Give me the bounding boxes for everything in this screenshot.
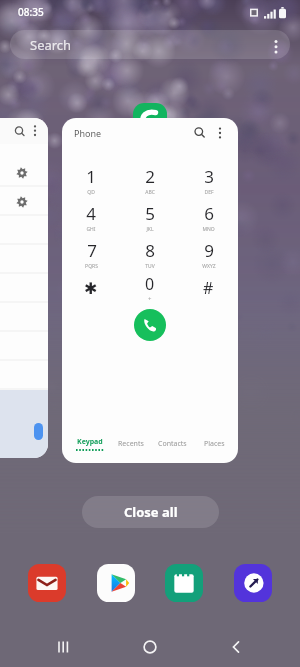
button[interactable]: Play Store (94, 561, 138, 605)
button[interactable]: Home (128, 627, 172, 667)
button[interactable]: 1 (62, 162, 120, 199)
button[interactable]: Contacts (151, 431, 194, 457)
staticText: Recents (118, 439, 144, 449)
staticText: 0 (145, 273, 155, 295)
button[interactable]: More options (210, 123, 230, 143)
staticText: MNO (202, 226, 215, 233)
staticText: 08:35 (18, 5, 44, 19)
staticText: JKL (146, 226, 154, 233)
staticText: Close all (124, 503, 178, 521)
staticText: Search (30, 36, 72, 54)
button[interactable]: 2 (120, 162, 179, 199)
staticText: 5 (145, 202, 155, 225)
staticText: 3 (204, 165, 214, 188)
button[interactable]: Calendar (162, 561, 206, 605)
button[interactable]: Call (134, 309, 166, 341)
button[interactable]: Phone (62, 118, 238, 463)
staticText: 9 (204, 239, 214, 262)
button[interactable]: 4 (62, 199, 120, 236)
button[interactable]: # (179, 273, 238, 303)
button[interactable]: 8 (120, 236, 179, 273)
button[interactable]: More options (262, 31, 290, 59)
staticText: 6 (204, 202, 214, 225)
staticText: Places (204, 439, 225, 449)
button[interactable]: 3 (179, 162, 238, 199)
button[interactable]: Keypad (68, 431, 111, 457)
staticText: ABC (145, 189, 155, 196)
staticText: QD (87, 189, 95, 196)
button[interactable]: Clock (231, 561, 275, 605)
button[interactable]: Search (190, 123, 210, 143)
button[interactable]: Recent apps (42, 627, 86, 667)
staticText: PQRS (85, 263, 98, 270)
button[interactable]: Email (25, 561, 69, 605)
button[interactable]: 7 (62, 236, 120, 273)
button[interactable]: 6 (179, 199, 238, 236)
staticText: Keypad (77, 437, 103, 447)
staticText: WXYZ (202, 263, 216, 270)
staticText: DEF (204, 189, 214, 196)
staticText: Contacts (158, 439, 187, 449)
button[interactable] (0, 118, 48, 458)
staticText: Phone (74, 127, 102, 139)
button[interactable]: ✱ (62, 273, 120, 303)
staticText: 7 (87, 239, 97, 262)
staticText: # (203, 277, 214, 299)
staticText: + (148, 295, 152, 303)
button[interactable]: Back (214, 627, 258, 667)
staticText: TUV (145, 263, 155, 270)
staticText: 2 (145, 165, 155, 188)
staticText: GHI (86, 226, 96, 233)
staticText: 4 (86, 202, 96, 225)
staticText: 1 (86, 165, 96, 188)
button[interactable]: Close all (82, 496, 219, 528)
staticText: ✱ (84, 279, 98, 298)
button[interactable]: Search (10, 30, 290, 59)
staticText: 8 (145, 239, 155, 262)
button[interactable]: 0 (120, 273, 179, 303)
button[interactable]: Places (194, 431, 234, 457)
other: Phone app icon (133, 103, 167, 137)
button[interactable]: 9 (179, 236, 238, 273)
button[interactable]: Recents (111, 431, 151, 457)
button[interactable]: 5 (120, 199, 179, 236)
